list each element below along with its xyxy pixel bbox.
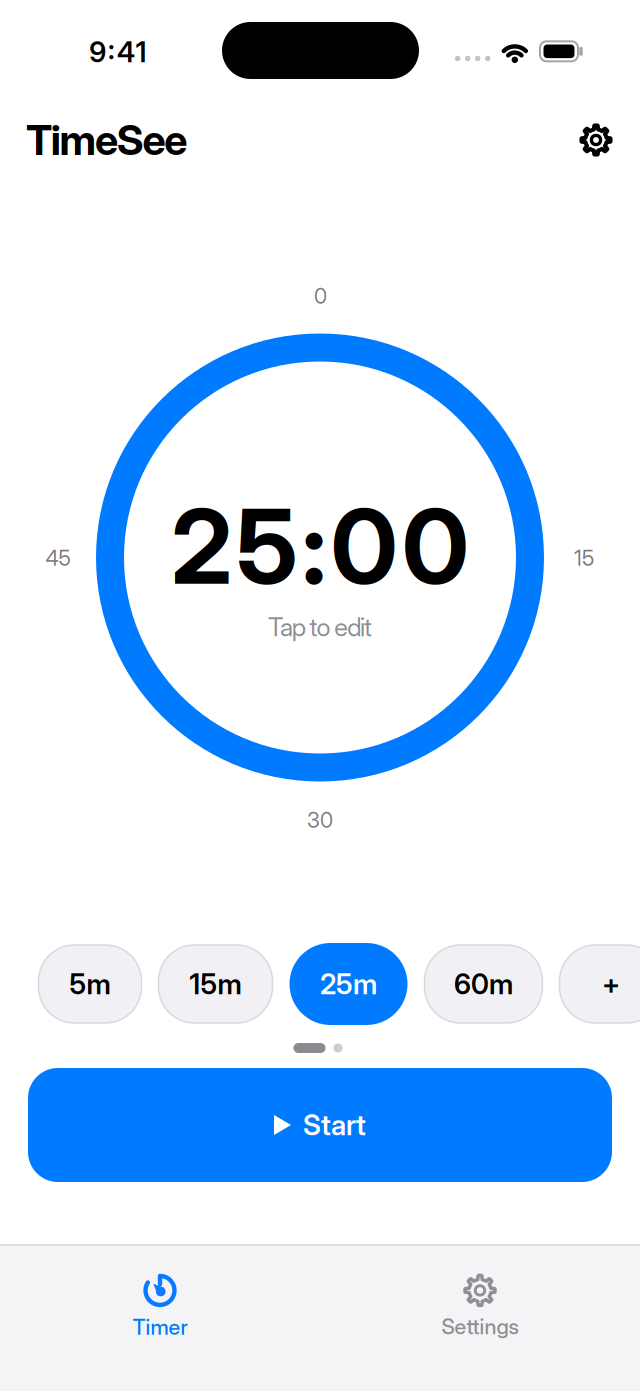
staticText: 5 [236,486,297,607]
button[interactable]: 5m [38,943,141,1025]
staticText: 2 [171,486,232,607]
staticText: 25m [320,967,377,1000]
staticText: 45 [45,545,70,571]
staticText: Settings [441,1314,518,1339]
button[interactable]: Timer [80,1260,240,1352]
button[interactable]: 25m [289,943,407,1025]
button[interactable]: Start [28,1068,612,1182]
staticText: TimeSee [26,116,187,164]
button[interactable]: + [559,943,640,1025]
staticText: 9:41 [89,35,147,68]
button[interactable]: Edit timer duration [96,333,544,781]
staticText: + [602,967,620,1000]
button[interactable]: Settings [400,1260,560,1352]
staticText: Tap to edit [268,612,372,642]
staticText: 0 [402,486,469,607]
button[interactable]: Settings [579,123,613,157]
staticText: 0 [331,486,398,607]
staticText: 0 [314,283,327,309]
staticText: Timer [132,1314,187,1340]
staticText: Start [303,1108,366,1141]
staticText: 60m [454,967,513,1000]
staticText: : [301,486,326,607]
staticText: 30 [307,807,333,833]
staticText: 15 [574,545,594,571]
button[interactable]: 15m [158,943,272,1025]
staticText: 15m [189,967,241,1000]
staticText: 5m [69,967,110,1000]
button[interactable]: 60m [424,943,542,1025]
